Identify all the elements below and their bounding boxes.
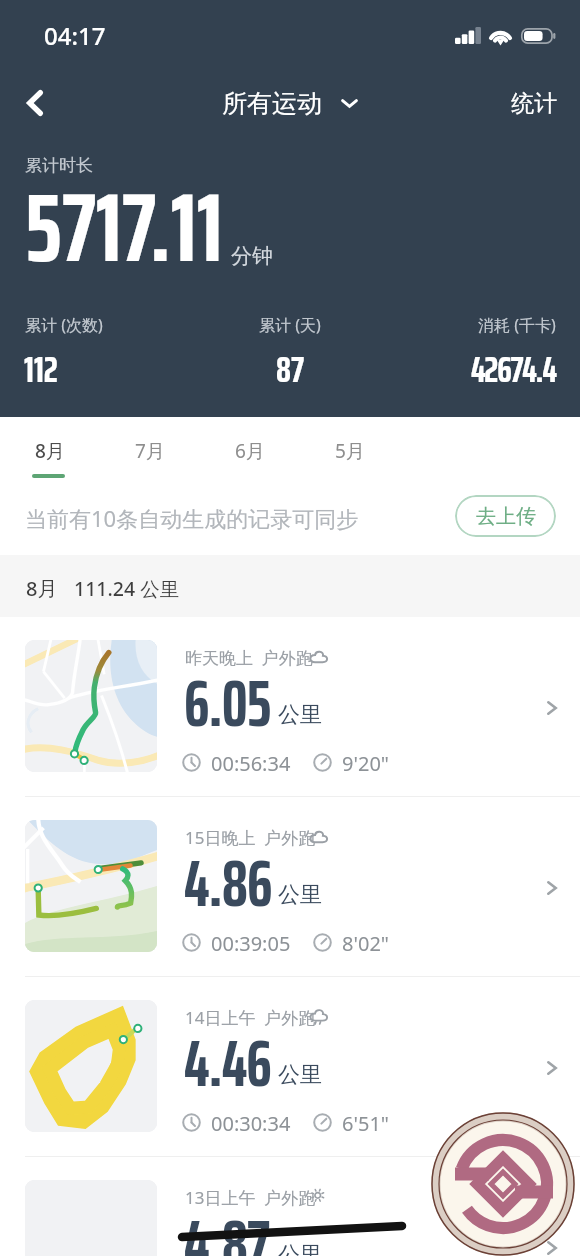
button[interactable]: 14日上午 户外跑 <box>0 977 580 1156</box>
staticText: 14日上午 户外跑 <box>185 1006 316 1029</box>
button[interactable]: 去上传 <box>455 495 556 537</box>
button[interactable]: Back <box>4 72 66 134</box>
staticText: 8'02" <box>342 930 389 957</box>
staticText: 8月 <box>35 438 65 464</box>
button[interactable]: 8月 <box>0 417 100 484</box>
button[interactable]: 7月 <box>100 417 200 484</box>
staticText: 111.24 公里 <box>74 575 180 602</box>
staticText: 公里 <box>278 881 322 909</box>
button[interactable]: 13日上午 户外跑 <box>0 1157 580 1256</box>
staticText: 5717.11 <box>25 151 223 304</box>
staticText: 87 <box>276 340 304 398</box>
staticText: 分钟 <box>231 243 273 269</box>
staticText: 13日上午 户外跑 <box>185 1186 316 1209</box>
button[interactable]: 15日晚上 户外跑 <box>0 797 580 976</box>
staticText: 公里 <box>278 1061 322 1089</box>
staticText: 6.05 <box>184 652 271 754</box>
staticText: 去上传 <box>476 504 536 529</box>
staticText: 昨天晚上 户外跑 <box>185 646 313 669</box>
staticText: 42674.4 <box>471 340 556 398</box>
button[interactable]: 5月 <box>300 417 400 484</box>
button[interactable]: 统计 <box>501 79 567 128</box>
staticText: 4.46 <box>184 1012 271 1114</box>
staticText: 00:56:34 <box>211 750 291 777</box>
staticText: 5月 <box>335 438 365 464</box>
staticText: 7月 <box>135 438 165 464</box>
staticText: 4.87 <box>184 1192 269 1256</box>
staticText: 112 <box>24 340 58 398</box>
staticText: 统计 <box>511 89 557 118</box>
staticText: 公里 <box>278 1241 322 1256</box>
staticText: 00:39:05 <box>211 930 291 957</box>
staticText: 累计 (次数) <box>25 314 103 336</box>
staticText: 累计时长 <box>25 155 93 176</box>
staticText: 8月 <box>26 575 58 602</box>
staticText: 00:30:34 <box>211 1110 291 1137</box>
button[interactable]: 6月 <box>200 417 300 484</box>
staticText: 6'51" <box>342 1110 389 1137</box>
staticText: 6月 <box>235 438 265 464</box>
staticText: 累计 (天) <box>259 314 321 336</box>
button[interactable]: 所有运动 <box>222 88 358 119</box>
staticText: 15日晚上 户外跑 <box>185 826 316 849</box>
staticText: 所有运动 <box>222 88 322 119</box>
staticText: 4.86 <box>184 832 272 934</box>
staticText: 04:17 <box>44 19 106 52</box>
staticText: 公里 <box>278 701 322 729</box>
staticText: 当前有10条自动生成的记录可同步 <box>25 503 359 533</box>
staticText: 9'20" <box>342 750 389 777</box>
button[interactable]: 昨天晚上 户外跑 <box>0 617 580 796</box>
staticText: 消耗 (千卡) <box>478 314 556 336</box>
